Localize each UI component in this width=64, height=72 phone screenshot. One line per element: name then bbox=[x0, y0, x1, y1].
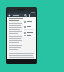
button[interactable] bbox=[23, 35, 35, 36]
button[interactable] bbox=[23, 24, 35, 29]
button[interactable] bbox=[12, 14, 23, 17]
button[interactable] bbox=[23, 30, 35, 35]
button[interactable]: Back bbox=[8, 14, 11, 17]
button[interactable]: More options bbox=[28, 14, 31, 17]
button[interactable] bbox=[23, 19, 35, 24]
button[interactable]: Search bbox=[24, 14, 27, 17]
